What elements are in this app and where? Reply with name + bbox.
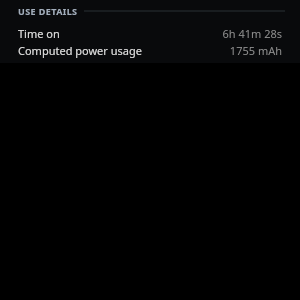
staticText: 6h 41m 28s xyxy=(222,26,282,41)
staticText: Time on xyxy=(18,26,60,41)
staticText: Computed power usage xyxy=(18,43,142,58)
button[interactable]: Time on xyxy=(0,26,300,41)
button[interactable]: Computed power usage xyxy=(0,43,300,58)
staticText: USE DETAILS xyxy=(18,5,78,17)
staticText: 1755 mAh xyxy=(229,43,282,58)
